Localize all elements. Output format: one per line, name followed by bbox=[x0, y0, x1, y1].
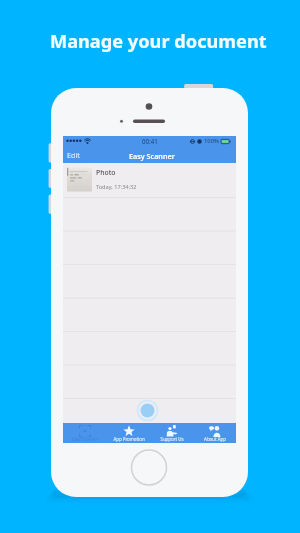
staticText: Edit bbox=[67, 150, 80, 160]
staticText: Manage your document bbox=[50, 29, 267, 54]
staticText: About App bbox=[204, 436, 226, 442]
staticText: Easy Scanner bbox=[71, 436, 99, 442]
staticText: App Promotion bbox=[113, 436, 145, 442]
button[interactable]: Edit bbox=[63, 147, 84, 163]
staticText: Today, 17:34:32 bbox=[96, 183, 137, 191]
button[interactable]: App Promotion bbox=[107, 423, 150, 443]
staticText: Photo bbox=[96, 168, 116, 177]
staticText: 100% bbox=[204, 137, 219, 145]
other: Scan bbox=[137, 400, 158, 421]
button[interactable]: About App bbox=[193, 423, 236, 443]
button[interactable]: Easy Scanner bbox=[63, 423, 107, 443]
button[interactable]: Photo bbox=[63, 163, 236, 196]
staticText: Support Us bbox=[160, 436, 184, 442]
staticText: Easy Scanner bbox=[129, 151, 175, 161]
button[interactable]: Support Us bbox=[150, 423, 193, 443]
staticText: 00:41 bbox=[142, 137, 158, 145]
